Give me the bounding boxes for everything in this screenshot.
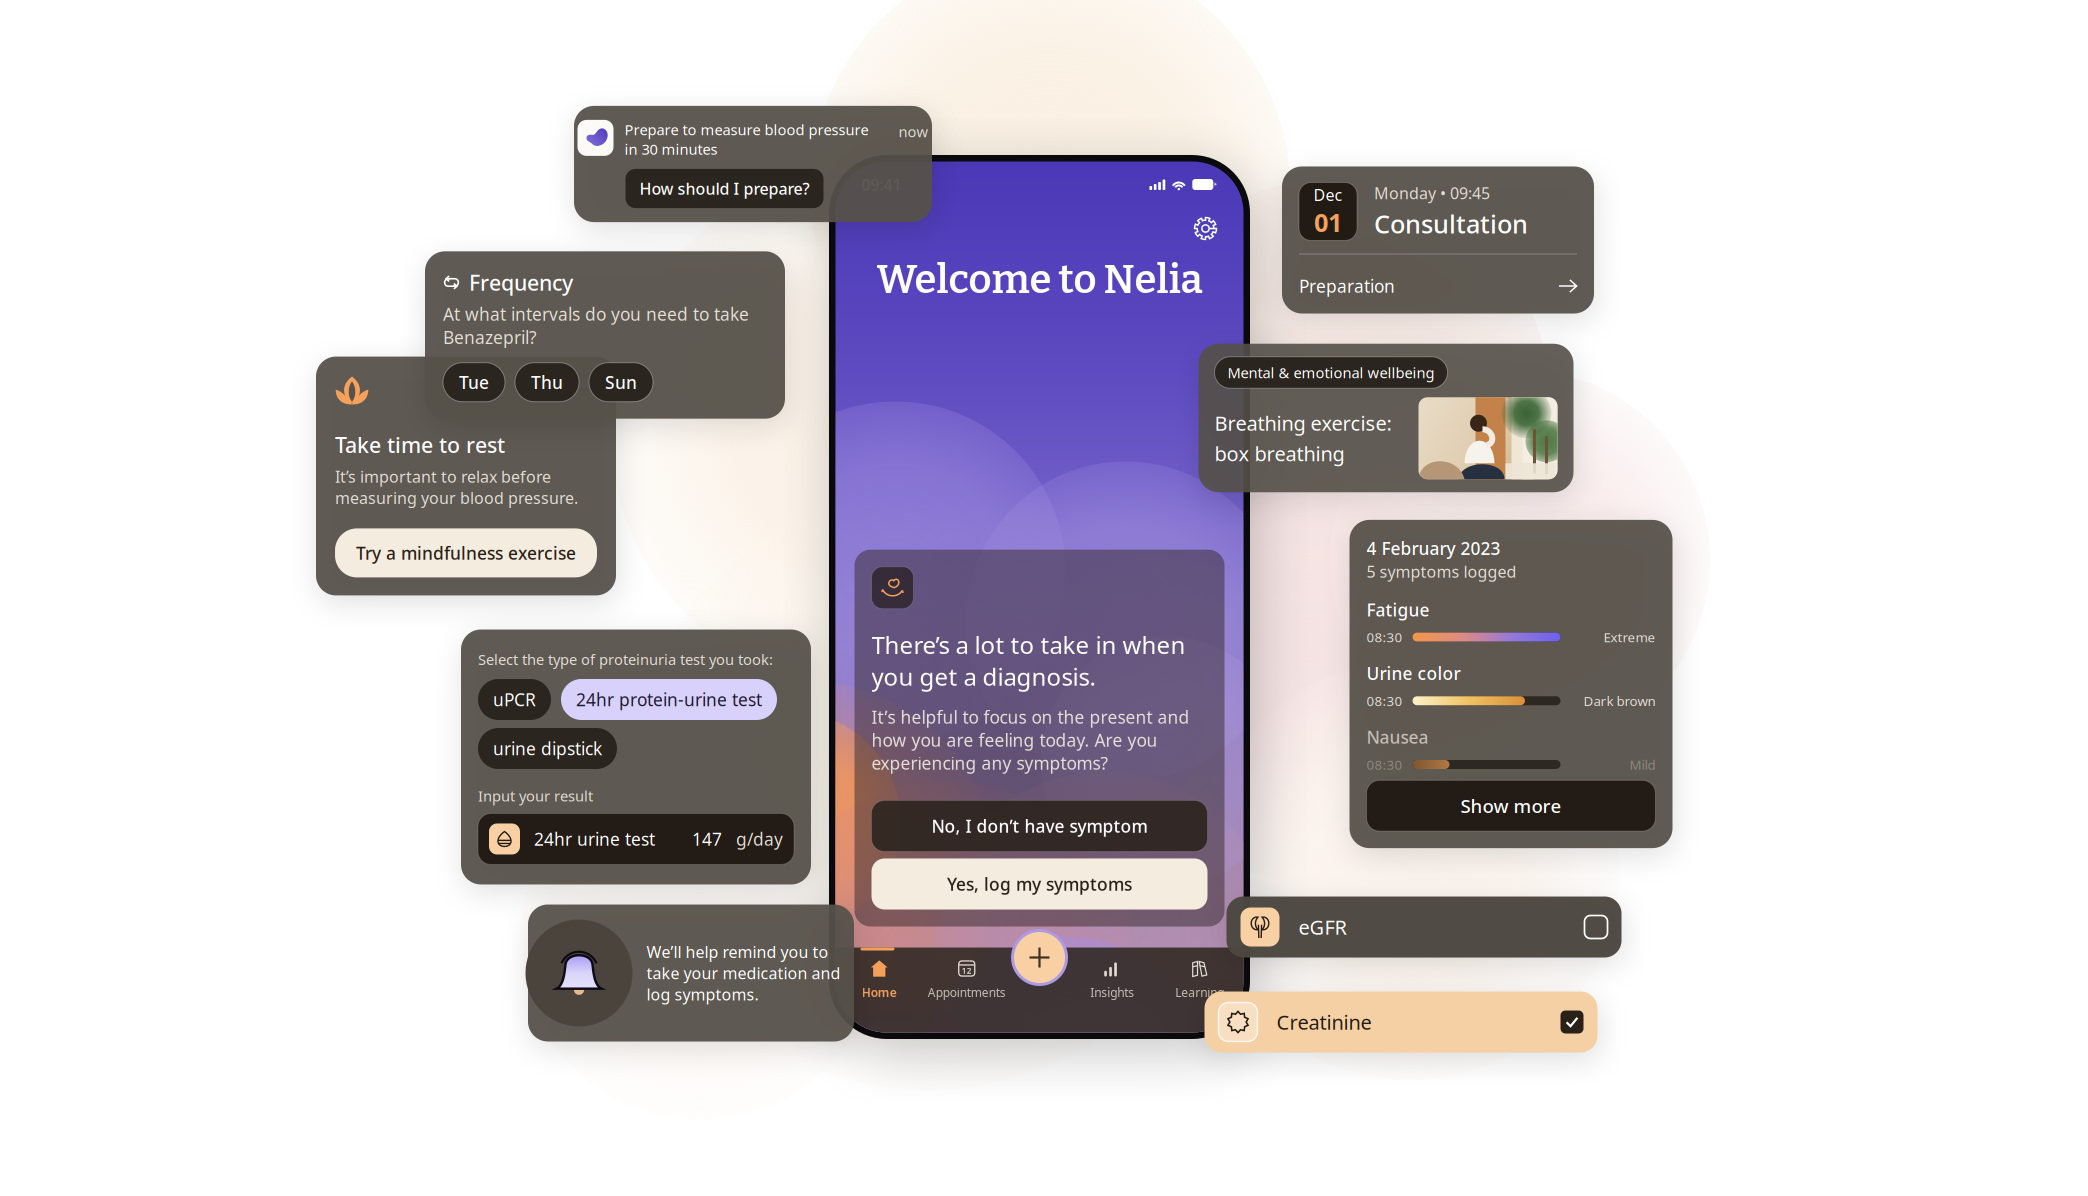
staticText: Select the type of proteinuria test you … bbox=[478, 649, 773, 669]
staticText: Frequency bbox=[469, 268, 573, 297]
button[interactable]: uPCR bbox=[478, 679, 551, 720]
button[interactable]: Tue bbox=[443, 363, 505, 402]
button[interactable]: Preparation bbox=[1299, 254, 1577, 297]
button[interactable]: Learning bbox=[1156, 947, 1243, 1009]
button[interactable]: Sun bbox=[589, 363, 653, 402]
staticText: 08:30 bbox=[1366, 756, 1402, 773]
staticText: Breathing exercise: bbox=[1214, 410, 1391, 436]
staticText: eGFR bbox=[1298, 914, 1346, 940]
staticText: Urine color bbox=[1366, 662, 1460, 685]
staticText: 5 symptoms logged bbox=[1366, 561, 1516, 582]
staticText: Mental & emotional wellbeing bbox=[1227, 363, 1434, 382]
staticText: Thu bbox=[531, 371, 563, 394]
staticText: Prepare to measure blood pressure in 30 … bbox=[624, 120, 868, 159]
staticText: 24hr urine test bbox=[534, 827, 655, 850]
staticText: Monday • 09:45 bbox=[1374, 182, 1490, 204]
staticText: Preparation bbox=[1299, 274, 1395, 297]
button[interactable]: 24hr protein-urine test bbox=[561, 679, 777, 720]
staticText: Consultation bbox=[1374, 207, 1528, 240]
staticText: Take time to rest bbox=[335, 431, 505, 459]
button[interactable]: 12 bbox=[923, 947, 1010, 1009]
staticText: Input your result bbox=[478, 786, 593, 805]
button[interactable]: Home bbox=[835, 947, 923, 1009]
staticText: urine dipstick bbox=[493, 737, 602, 760]
staticText: Welcome to Nelia bbox=[876, 255, 1202, 303]
staticText: Nausea bbox=[1366, 726, 1428, 749]
staticText: Try a mindfulness exercise bbox=[356, 541, 576, 564]
staticText: 12 bbox=[962, 965, 972, 976]
button[interactable]: No, I don’t have symptom bbox=[871, 800, 1207, 851]
button[interactable]: Yes, log my symptoms bbox=[871, 858, 1207, 909]
button[interactable]: Creatinine bbox=[1204, 991, 1597, 1052]
staticText: How should I prepare? bbox=[639, 178, 809, 199]
staticText: g/day bbox=[736, 827, 783, 850]
staticText: There’s a lot to take in when you get a … bbox=[871, 629, 1185, 692]
staticText: box breathing bbox=[1214, 440, 1344, 467]
staticText: It’s helpful to focus on the present and… bbox=[871, 705, 1189, 774]
staticText: Tue bbox=[459, 371, 489, 394]
staticText: Creatinine bbox=[1276, 1009, 1371, 1035]
staticText: Extreme bbox=[1603, 628, 1655, 646]
staticText: Dark brown bbox=[1583, 692, 1655, 710]
staticText: uPCR bbox=[493, 688, 536, 711]
button[interactable]: Add bbox=[1011, 929, 1068, 986]
staticText: Dec bbox=[1313, 184, 1342, 205]
staticText: No, I don’t have symptom bbox=[931, 814, 1147, 837]
staticText: Yes, log my symptoms bbox=[947, 872, 1132, 895]
staticText: 01 bbox=[1314, 205, 1342, 239]
staticText: We’ll help remind you to take your medic… bbox=[646, 941, 840, 1005]
button[interactable]: Thu bbox=[515, 363, 579, 402]
staticText: At what intervals do you need to take Be… bbox=[443, 303, 749, 349]
staticText: 08:30 bbox=[1366, 692, 1402, 710]
staticText: 24hr protein-urine test bbox=[576, 688, 762, 711]
staticText: now bbox=[898, 122, 928, 141]
staticText: Learning bbox=[1175, 984, 1224, 1000]
staticText: 08:30 bbox=[1366, 628, 1402, 646]
staticText: 4 February 2023 bbox=[1366, 537, 1500, 560]
staticText: Insights bbox=[1090, 984, 1134, 1000]
button[interactable]: Show more bbox=[1366, 780, 1655, 831]
staticText: Show more bbox=[1460, 793, 1561, 818]
staticText: Mild bbox=[1629, 756, 1655, 773]
staticText: It’s important to relax before measuring… bbox=[335, 466, 578, 508]
button[interactable]: Insights bbox=[1068, 947, 1156, 1009]
staticText: Fatigue bbox=[1366, 598, 1429, 621]
staticText: 147 bbox=[692, 827, 722, 850]
button[interactable]: How should I prepare? bbox=[625, 169, 823, 208]
staticText: 09:41 bbox=[861, 174, 901, 195]
button[interactable]: Try a mindfulness exercise bbox=[335, 528, 597, 577]
button[interactable]: Settings bbox=[1188, 211, 1222, 245]
staticText: Sun bbox=[605, 371, 637, 394]
staticText: Home bbox=[862, 984, 897, 1000]
staticText: Appointments bbox=[928, 984, 1006, 1000]
button[interactable]: urine dipstick bbox=[478, 728, 617, 769]
button[interactable]: eGFR bbox=[1226, 896, 1621, 957]
